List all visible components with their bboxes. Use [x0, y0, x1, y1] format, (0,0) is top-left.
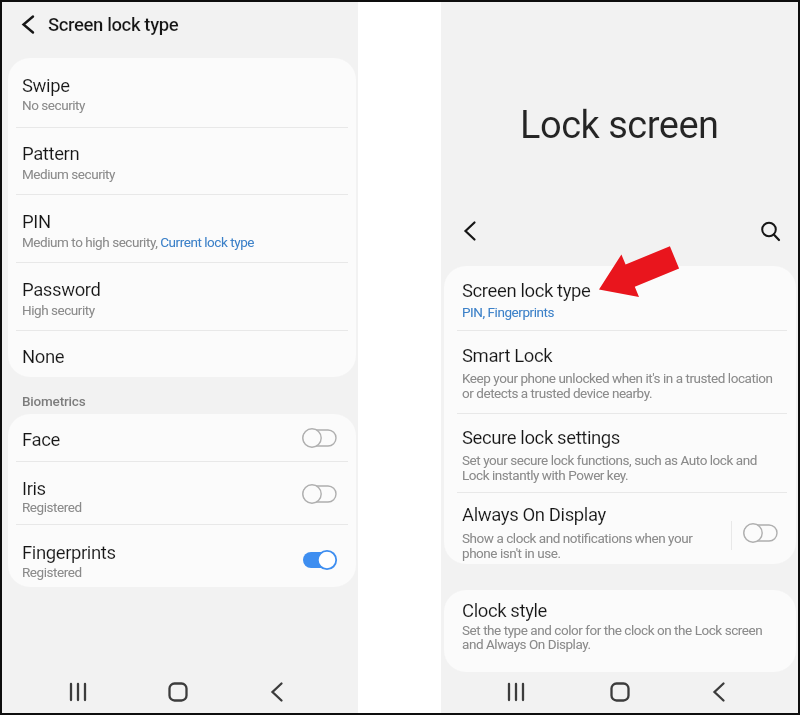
staticText: Keep your phone unlocked when it's in a … [462, 370, 773, 386]
staticText: High security [22, 302, 95, 318]
staticText: Swipe [22, 75, 70, 97]
staticText: Set your secure lock functions, such as … [462, 452, 757, 468]
staticText: Medium security [22, 166, 116, 182]
staticText: Fingerprints [22, 542, 116, 564]
staticText: Smart Lock [462, 345, 553, 367]
staticText: Lock screen [520, 103, 719, 143]
button[interactable] [461, 220, 481, 242]
staticText: or detects a trusted device nearby. [462, 385, 653, 401]
staticText: Set the type and color for the clock on … [462, 622, 763, 638]
staticText: Lock instantly with Power key. [462, 467, 629, 483]
staticText: No security [22, 97, 86, 113]
button[interactable] [8, 331, 356, 377]
staticText: None [22, 346, 65, 368]
staticText: Pattern [22, 143, 80, 165]
staticText: phone isn't in use. [462, 545, 561, 561]
button[interactable] [444, 414, 796, 492]
button[interactable] [743, 522, 780, 544]
staticText: Face [22, 429, 60, 451]
button[interactable] [8, 195, 356, 262]
staticText: Always On Display [462, 504, 606, 526]
button[interactable] [302, 427, 339, 449]
staticText: Medium to high security, Current lock ty… [22, 234, 254, 250]
staticText: Biometrics [22, 393, 86, 409]
staticText: Clock style [462, 600, 548, 622]
button[interactable] [8, 128, 356, 194]
button[interactable] [302, 483, 339, 505]
staticText: Screen lock type [462, 280, 591, 302]
staticText: Show a clock and notifications when your [462, 530, 693, 546]
staticText: and Always On Display. [462, 636, 591, 652]
staticText: Screen lock type [48, 14, 179, 36]
button[interactable] [500, 680, 740, 704]
button[interactable] [444, 590, 796, 672]
button[interactable] [8, 462, 356, 524]
staticText: Registered [22, 499, 82, 515]
button[interactable] [8, 60, 356, 127]
button[interactable] [8, 263, 356, 330]
staticText: Iris [22, 478, 46, 500]
staticText: PIN [22, 211, 51, 233]
staticText: PIN, Fingerprints [462, 304, 554, 320]
button[interactable] [444, 268, 796, 330]
button[interactable] [18, 14, 38, 36]
button[interactable] [302, 549, 339, 571]
button[interactable] [58, 680, 298, 704]
button[interactable] [8, 525, 356, 587]
staticText: Password [22, 279, 101, 301]
staticText: Registered [22, 564, 82, 580]
staticText: Secure lock settings [462, 427, 620, 449]
button[interactable] [444, 331, 796, 413]
button[interactable] [758, 219, 784, 245]
button[interactable] [444, 493, 796, 564]
button[interactable] [8, 416, 356, 461]
